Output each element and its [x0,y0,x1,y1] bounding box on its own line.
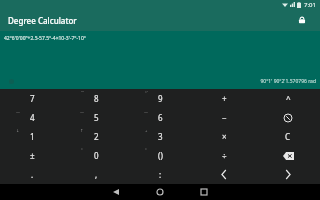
button[interactable]: 7 [0,89,64,108]
staticText: . [31,169,34,180]
button[interactable]: : [128,165,192,184]
staticText: 1 [30,131,35,142]
staticText: 3 [158,131,163,142]
button[interactable]: − [192,108,256,127]
staticText: ÷ [222,150,227,161]
button[interactable]: back [256,146,320,165]
staticText: Degree Calculator [8,15,77,26]
button[interactable]: 2 [64,127,128,146]
staticText: 6 [158,112,163,123]
staticText: 2 [94,131,99,142]
staticText: 7 [30,93,35,104]
button[interactable]: 1 [0,127,64,146]
button[interactable]: 6 [128,108,192,127]
button[interactable]: ± [0,146,64,165]
staticText: 42°6'0'00"+2.5-57.5°-4×10-3'-7°-10° [4,35,86,42]
staticText: ''' [81,90,84,95]
staticText: ↑ [80,128,84,133]
staticText: 8 [94,93,99,104]
button[interactable]: + [192,89,256,108]
button[interactable]: prev [192,165,256,184]
button[interactable]: Recents [189,184,219,200]
button[interactable]: 8 [64,89,128,108]
staticText: ° [81,147,83,152]
staticText: ^ [286,93,291,104]
staticText: 5 [94,112,99,123]
staticText: °' [145,90,148,95]
button[interactable]: ^ [256,89,320,108]
button[interactable]: () [128,146,192,165]
staticText: + [145,128,148,133]
button[interactable]: . [0,165,64,184]
staticText: 0 [94,150,99,161]
button[interactable]: 0 [64,146,128,165]
button[interactable]: Home [145,184,175,200]
staticText: — [80,109,84,114]
staticText: ↓ [16,128,20,133]
button[interactable]: 4 [0,108,64,127]
button[interactable]: clear [256,108,320,127]
button[interactable]: Lock [292,10,312,30]
staticText: ± [30,150,35,161]
staticText: − [222,112,227,123]
staticText: 4 [30,112,35,123]
staticText: — [144,109,148,114]
staticText: 90°1' 90°2'1.570796 rad [260,78,316,85]
staticText: × [222,131,227,142]
button[interactable]: 5 [64,108,128,127]
staticText: 9 [158,93,163,104]
button[interactable]: 9 [128,89,192,108]
staticText: () [158,150,163,161]
staticText: C [285,131,291,142]
button[interactable]: Back [101,184,131,200]
staticText: 7:01 [304,1,316,9]
button[interactable]: Angle mode [4,74,18,88]
staticText: + [222,93,227,104]
button[interactable]: × [192,127,256,146]
button[interactable]: 3 [128,127,192,146]
button[interactable]: C [256,127,320,146]
button[interactable]: ÷ [192,146,256,165]
staticText: : [159,169,162,180]
button[interactable]: , [64,165,128,184]
staticText: — [16,109,20,114]
button[interactable]: next [256,165,320,184]
staticText: ° [145,147,147,152]
staticText: , [95,169,98,180]
